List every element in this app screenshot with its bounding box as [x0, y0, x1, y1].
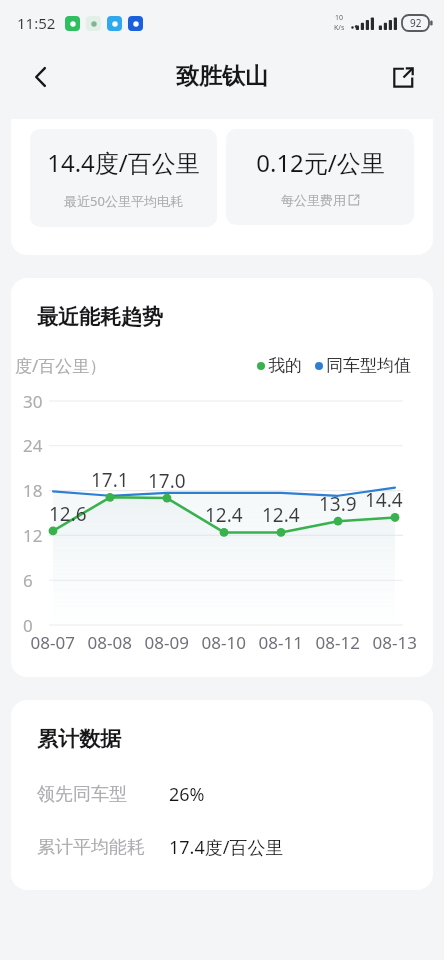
- staticText: 26%: [169, 782, 205, 807]
- staticText: 最近50公里平均电耗: [64, 192, 183, 210]
- staticText: 累计数据: [37, 726, 121, 752]
- staticText: 17.4度/百公里: [169, 835, 284, 860]
- staticText: 我的: [268, 355, 302, 376]
- staticText: K/s: [334, 23, 345, 33]
- staticText: 同车型均值: [326, 355, 411, 376]
- staticText: 度/百公里）: [15, 354, 107, 377]
- staticText: 10: [335, 13, 344, 23]
- staticText: 致胜钛山: [176, 62, 268, 91]
- button[interactable]: Share: [380, 54, 426, 100]
- staticText: 14.4度/百公里: [47, 146, 200, 179]
- staticText: 每公里费用: [281, 192, 346, 208]
- button[interactable]: 0.12元/公里: [226, 129, 414, 225]
- button[interactable]: 14.4度/百公里: [30, 129, 217, 227]
- staticText: 11:52: [17, 13, 56, 33]
- staticText: 最近能耗趋势: [37, 304, 163, 330]
- button[interactable]: 累计平均能耗: [37, 835, 433, 860]
- button[interactable]: 领先同车型: [37, 782, 433, 807]
- button[interactable]: Back: [18, 54, 64, 100]
- staticText: 累计平均能耗: [37, 836, 145, 859]
- staticText: 92: [410, 16, 422, 30]
- staticText: 领先同车型: [37, 783, 127, 806]
- staticText: 0.12元/公里: [256, 146, 385, 179]
